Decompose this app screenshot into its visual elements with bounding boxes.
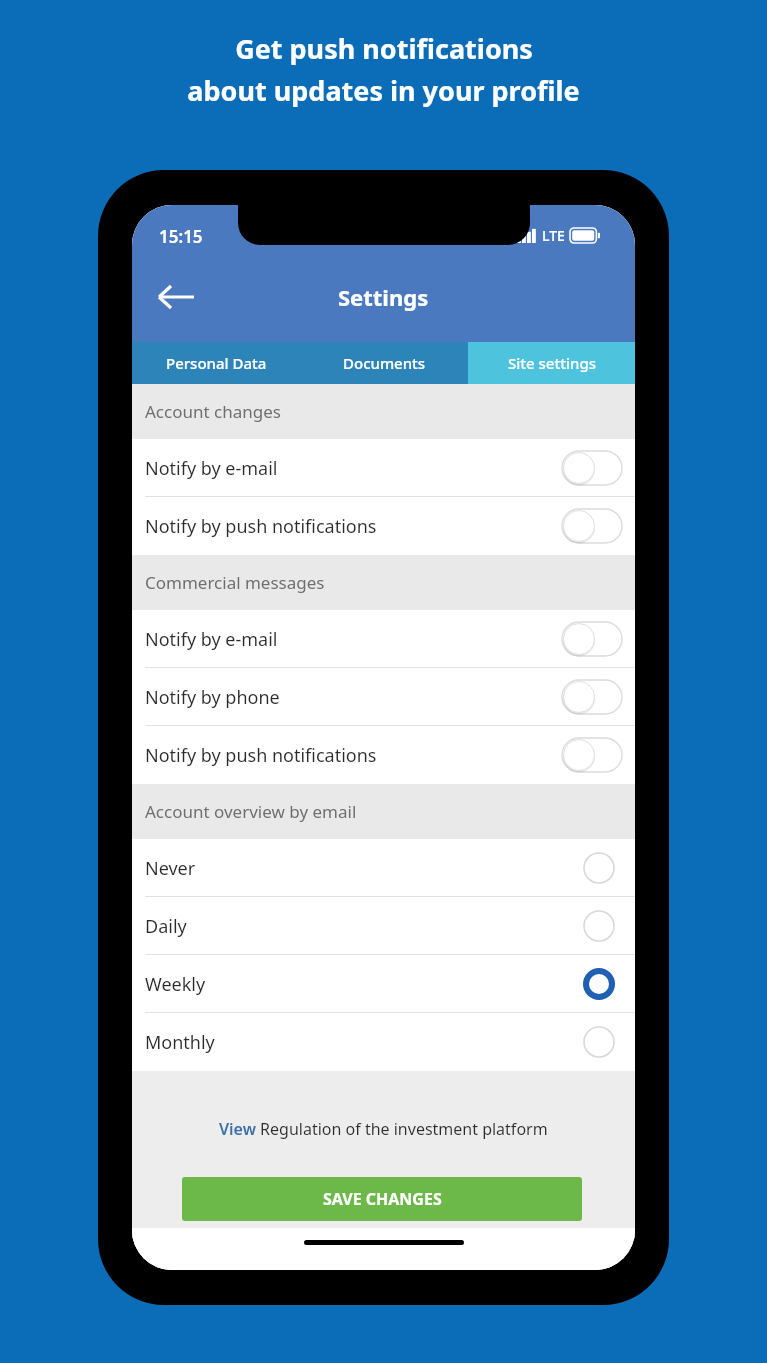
staticText: Notify by push notifications	[145, 514, 562, 539]
staticText: Account changes	[145, 400, 281, 423]
staticText: SAVE CHANGES	[323, 1188, 442, 1210]
button[interactable]: Notify by phone	[132, 668, 635, 726]
staticText: Notify by e-mail	[145, 627, 562, 652]
staticText: 15:15	[159, 225, 203, 248]
button[interactable]: Notify by e-mail	[132, 610, 635, 668]
button[interactable]: Notify by push notifications	[132, 497, 635, 555]
staticText: Monthly	[145, 1030, 583, 1055]
staticText: Commercial messages	[145, 571, 325, 594]
button[interactable]: Weekly	[132, 955, 635, 1013]
staticText: Site settings	[508, 353, 596, 373]
button[interactable]: Notify by push notifications	[132, 726, 635, 784]
button[interactable]: Personal Data	[132, 342, 300, 384]
button[interactable]: Notify by e-mail	[132, 439, 635, 497]
button[interactable]: Daily	[132, 897, 635, 955]
staticText: Notify by phone	[145, 685, 562, 710]
staticText: Never	[145, 856, 583, 881]
button[interactable]: Documents	[300, 342, 468, 384]
staticText: Weekly	[145, 972, 583, 997]
staticText: Personal Data	[166, 353, 267, 373]
staticText: Settings	[338, 282, 429, 312]
button[interactable]: Back	[146, 267, 206, 327]
staticText: Documents	[343, 353, 426, 373]
button[interactable]: Never	[132, 839, 635, 897]
staticText: Get push notifications	[235, 30, 533, 67]
button[interactable]: View Regulation of the investment platfo…	[219, 1118, 548, 1140]
button[interactable]: SAVE CHANGES	[182, 1177, 582, 1221]
staticText: Account overview by email	[145, 800, 357, 823]
button[interactable]: Site settings	[468, 342, 635, 384]
staticText: Notify by e-mail	[145, 456, 562, 481]
staticText: Daily	[145, 914, 583, 939]
staticText: about updates in your profile	[187, 72, 580, 109]
button[interactable]: Monthly	[132, 1013, 635, 1071]
staticText: Notify by push notifications	[145, 743, 562, 768]
staticText: LTE	[542, 226, 565, 245]
